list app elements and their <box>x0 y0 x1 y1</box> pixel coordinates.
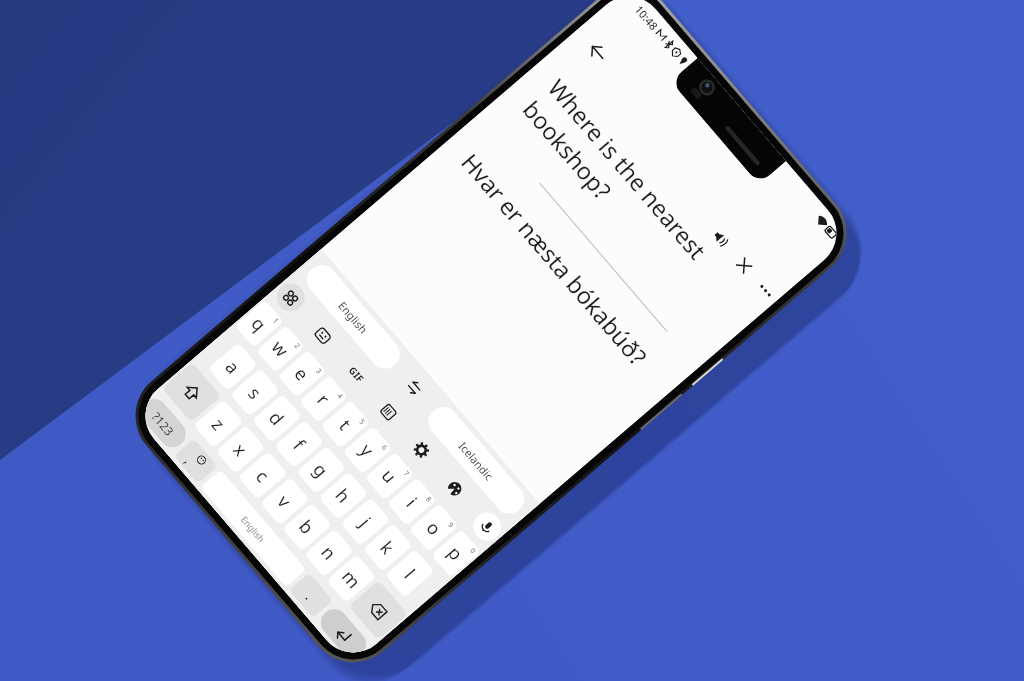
staticText: GIF <box>346 363 367 385</box>
button[interactable]: a <box>208 342 258 391</box>
button[interactable]: Icelandic <box>422 401 530 520</box>
button[interactable]: Comma and emoji <box>173 438 218 484</box>
staticText: Icelandic <box>456 439 497 483</box>
staticText: i <box>401 492 423 512</box>
button[interactable]: r <box>299 375 348 423</box>
button[interactable]: d <box>252 394 302 443</box>
button[interactable]: Clear <box>719 240 769 291</box>
staticText: Hvar er næsta bókabúð? <box>454 147 654 372</box>
staticText: t <box>334 414 357 436</box>
button[interactable]: h <box>318 471 368 520</box>
staticText: m <box>336 565 366 594</box>
button[interactable]: l <box>385 549 435 598</box>
staticText: 2 <box>292 341 302 352</box>
button[interactable]: Voice input <box>467 507 507 546</box>
staticText: ?123 <box>149 409 178 439</box>
button[interactable]: t <box>320 400 370 449</box>
staticText: d <box>263 406 290 431</box>
button[interactable]: q <box>234 300 284 348</box>
button[interactable]: f <box>274 420 324 468</box>
button[interactable]: English <box>301 259 406 375</box>
staticText: h <box>330 483 356 509</box>
button[interactable]: ?123 <box>135 393 191 453</box>
button[interactable]: Clipboard <box>369 392 409 432</box>
staticText: p <box>442 541 469 566</box>
staticText: 7 <box>401 469 412 479</box>
staticText: English <box>335 298 371 337</box>
button[interactable]: p <box>431 529 481 578</box>
staticText: 0 <box>467 546 478 557</box>
staticText: 8 <box>423 495 434 505</box>
staticText: y <box>354 438 380 462</box>
button[interactable]: c <box>238 451 288 500</box>
button[interactable]: u <box>365 451 415 500</box>
staticText: 10:48 <box>632 2 662 34</box>
staticText: q <box>246 312 272 337</box>
staticText: , <box>181 452 198 467</box>
staticText: 5 <box>357 417 368 427</box>
button[interactable]: s <box>230 368 280 417</box>
button[interactable]: Listen <box>695 213 746 264</box>
button[interactable]: Enter <box>315 604 372 663</box>
button[interactable]: . <box>289 573 333 618</box>
staticText: j <box>354 512 377 532</box>
staticText: e <box>289 362 315 386</box>
staticText: z <box>206 413 231 436</box>
staticText: o <box>421 516 447 540</box>
staticText: n <box>315 540 342 566</box>
staticText: r <box>311 388 336 411</box>
staticText: v <box>272 490 297 513</box>
staticText: a <box>220 355 246 380</box>
button[interactable]: o <box>409 503 459 552</box>
staticText: k <box>375 536 400 560</box>
button[interactable]: x <box>216 425 266 474</box>
button[interactable]: w <box>256 325 305 373</box>
staticText: w <box>266 335 295 363</box>
button[interactable]: z <box>193 399 243 448</box>
staticText: b <box>293 515 320 540</box>
button[interactable]: GIF <box>337 354 376 394</box>
button[interactable]: Back <box>569 23 626 80</box>
staticText: s <box>242 382 267 405</box>
staticText: 9 <box>445 520 456 531</box>
staticText: g <box>307 458 334 483</box>
staticText: English <box>239 513 268 544</box>
staticText: l <box>399 564 421 584</box>
button[interactable]: j <box>341 497 390 546</box>
button[interactable]: English <box>200 469 306 587</box>
staticText: x <box>227 438 253 462</box>
button[interactable]: k <box>363 523 413 572</box>
button[interactable]: m <box>326 554 376 603</box>
staticText: Where is the nearest bookshop? <box>516 72 714 288</box>
button[interactable]: n <box>304 528 354 577</box>
staticText: 1 <box>270 316 281 327</box>
button[interactable]: Shift <box>162 362 221 422</box>
button[interactable]: b <box>282 503 332 551</box>
button[interactable]: v <box>260 477 310 526</box>
button[interactable]: i <box>387 477 437 526</box>
staticText: 6 <box>379 443 390 453</box>
button[interactable]: Settings <box>402 430 441 470</box>
button[interactable]: y <box>343 426 392 474</box>
staticText: u <box>376 464 403 489</box>
button[interactable]: Backspace <box>348 580 408 640</box>
button[interactable]: More options <box>744 269 787 312</box>
button[interactable]: g <box>296 445 346 494</box>
button[interactable]: Swap languages <box>383 355 445 420</box>
staticText: . <box>301 587 320 604</box>
staticText: 4 <box>335 391 345 402</box>
staticText: c <box>250 464 275 488</box>
button[interactable]: Themes <box>435 469 474 508</box>
staticText: f <box>287 434 311 456</box>
button[interactable]: Stickers <box>303 316 343 355</box>
staticText: 3 <box>313 366 324 377</box>
button[interactable]: e <box>277 350 327 398</box>
button[interactable]: Apps <box>271 278 310 317</box>
